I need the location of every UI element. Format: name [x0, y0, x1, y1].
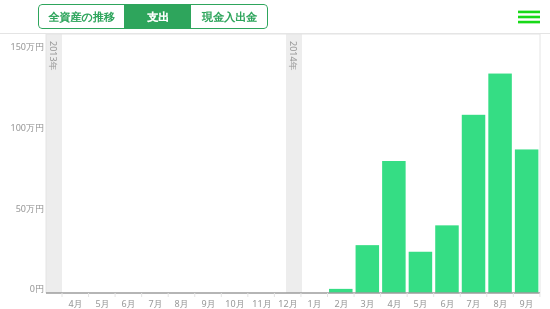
staticText: 4月 — [68, 297, 83, 309]
staticText: 9月 — [519, 297, 534, 309]
staticText: 現金入出金 — [202, 10, 257, 24]
button[interactable]: 現金入出金 — [191, 4, 268, 29]
staticText: 4月 — [387, 297, 402, 309]
staticText: 7月 — [466, 297, 481, 309]
staticText: 10月 — [225, 297, 245, 309]
staticText: 9月 — [201, 297, 216, 309]
staticText: 7月 — [148, 297, 163, 309]
staticText: 5月 — [413, 297, 428, 309]
staticText: 1月 — [307, 297, 322, 309]
staticText: 150万円 — [10, 40, 44, 52]
staticText: 6月 — [121, 297, 136, 309]
staticText: 5月 — [95, 297, 110, 309]
button[interactable]: 支出 — [125, 4, 190, 29]
staticText: 8月 — [493, 297, 508, 309]
staticText: 50万円 — [15, 202, 44, 214]
staticText: 2013年 — [48, 41, 60, 71]
staticText: 2014年 — [288, 41, 300, 71]
staticText: 6月 — [440, 297, 455, 309]
button[interactable]: 全資産の推移 — [38, 4, 124, 29]
staticText: 11月 — [252, 297, 272, 309]
staticText: 100万円 — [10, 121, 44, 133]
staticText: 12月 — [278, 297, 298, 309]
staticText: 0円 — [29, 282, 44, 294]
staticText: 3月 — [360, 297, 375, 309]
button[interactable]: Menu — [512, 0, 546, 34]
staticText: 全資産の推移 — [48, 10, 115, 24]
staticText: 2月 — [334, 297, 349, 309]
staticText: 8月 — [174, 297, 189, 309]
staticText: 支出 — [147, 10, 169, 24]
